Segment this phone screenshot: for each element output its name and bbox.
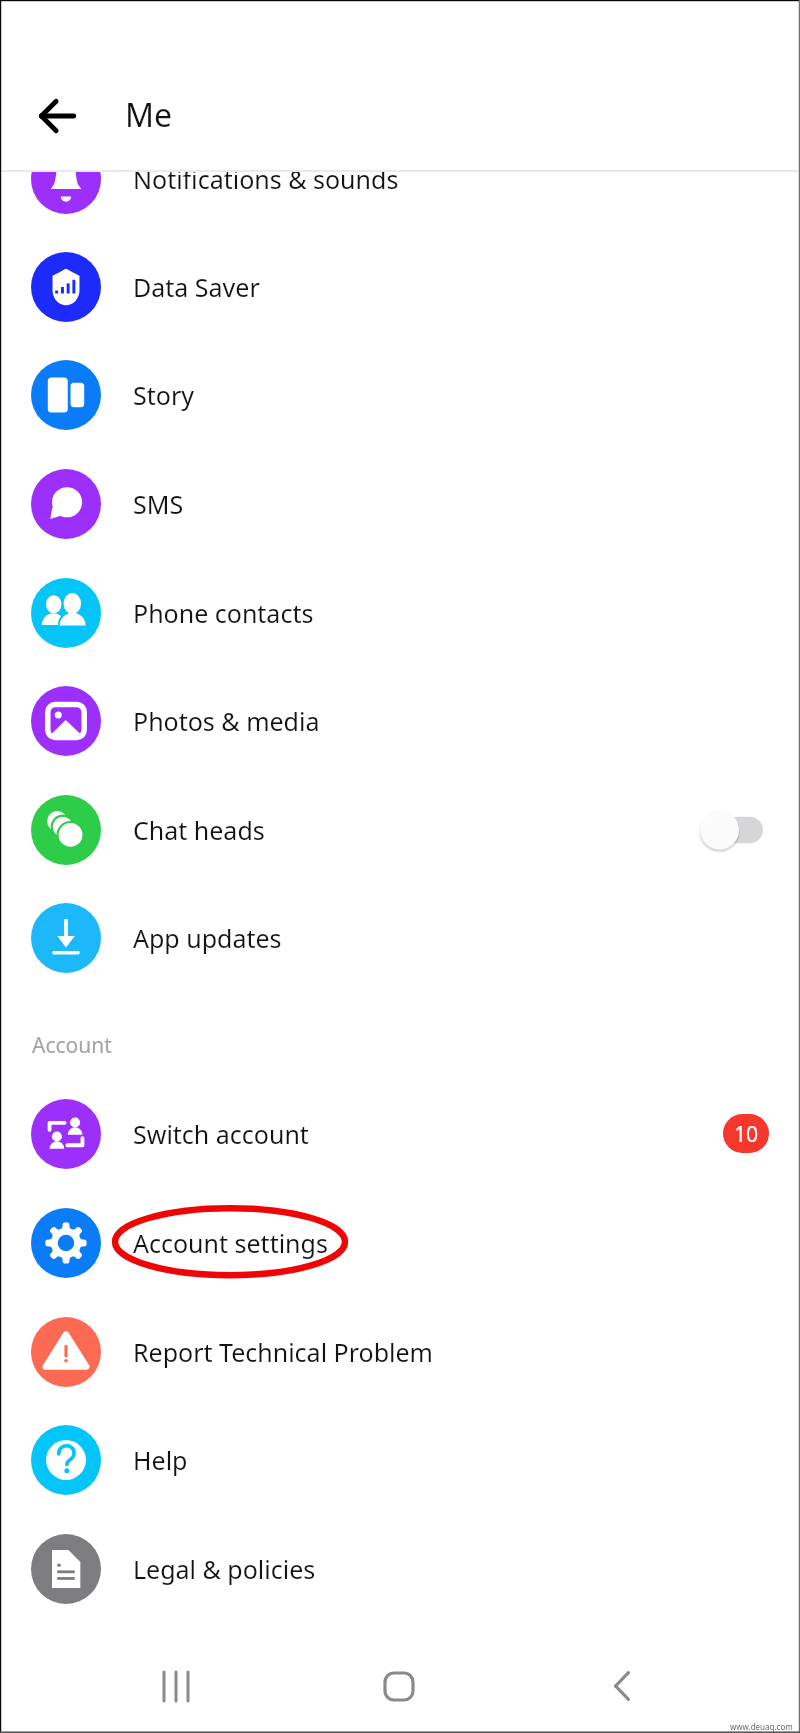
button[interactable]: Chat heads bbox=[0, 775, 800, 884]
button[interactable]: Switch account bbox=[0, 1079, 800, 1188]
staticText: Account bbox=[32, 1031, 112, 1060]
button[interactable]: Data Saver bbox=[0, 232, 800, 341]
staticText: Help bbox=[133, 1443, 188, 1477]
button[interactable]: Back bbox=[572, 1651, 672, 1721]
button[interactable]: Help bbox=[0, 1405, 800, 1514]
staticText: Report Technical Problem bbox=[133, 1335, 433, 1369]
button[interactable]: Photos & media bbox=[0, 666, 800, 775]
button[interactable]: Recent apps bbox=[125, 1651, 225, 1721]
button[interactable]: Report Technical Problem bbox=[0, 1297, 800, 1406]
button[interactable]: App updates bbox=[0, 883, 800, 992]
staticText: Photos & media bbox=[133, 704, 320, 738]
staticText: Me bbox=[125, 93, 173, 137]
button[interactable]: Notifications & sounds bbox=[0, 171, 800, 233]
staticText: SMS bbox=[133, 487, 184, 521]
staticText: Story bbox=[133, 378, 194, 412]
staticText: www.deuaq.com bbox=[730, 1721, 793, 1732]
staticText: Account settings bbox=[133, 1226, 328, 1260]
button[interactable]: Home bbox=[349, 1651, 449, 1721]
staticText: 10 bbox=[734, 1119, 759, 1148]
button[interactable]: Back bbox=[13, 72, 101, 160]
staticText: Phone contacts bbox=[133, 596, 314, 630]
button[interactable]: SMS bbox=[0, 449, 800, 558]
button[interactable]: Story bbox=[0, 340, 800, 449]
button[interactable]: Account settings bbox=[0, 1188, 800, 1297]
staticText: Switch account bbox=[133, 1117, 309, 1151]
button[interactable]: Chat heads toggle bbox=[700, 803, 763, 857]
staticText: Data Saver bbox=[133, 270, 260, 304]
staticText: Chat heads bbox=[133, 813, 265, 847]
button[interactable]: Phone contacts bbox=[0, 558, 800, 667]
button[interactable]: Legal & policies bbox=[0, 1514, 800, 1623]
staticText: App updates bbox=[133, 921, 282, 955]
staticText: Notifications & sounds bbox=[133, 171, 399, 196]
staticText: Legal & policies bbox=[133, 1552, 316, 1586]
